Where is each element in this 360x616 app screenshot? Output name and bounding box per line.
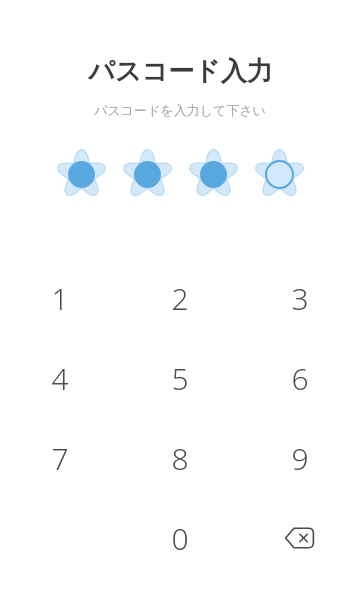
staticText: 6: [291, 358, 309, 399]
button[interactable]: 4: [20, 338, 100, 418]
button[interactable]: 8: [140, 418, 220, 498]
staticText: 7: [51, 438, 69, 479]
staticText: 9: [291, 438, 309, 479]
button[interactable]: 5: [140, 338, 220, 418]
button[interactable]: 7: [20, 418, 100, 498]
button[interactable]: 3: [260, 258, 340, 338]
staticText: 0: [171, 518, 189, 559]
staticText: 3: [291, 278, 309, 319]
staticText: 1: [51, 278, 69, 319]
button[interactable]: Backspace: [260, 498, 340, 578]
button[interactable]: 0: [140, 498, 220, 578]
staticText: 5: [171, 358, 189, 399]
button[interactable]: 9: [260, 418, 340, 498]
button[interactable]: 1: [20, 258, 100, 338]
staticText: 4: [51, 358, 69, 399]
staticText: 2: [171, 278, 189, 319]
button[interactable]: 6: [260, 338, 340, 418]
staticText: 8: [171, 438, 189, 479]
staticText: パスコード入力: [88, 55, 273, 88]
button[interactable]: 2: [140, 258, 220, 338]
staticText: パスコードを入力して下さい: [94, 102, 266, 118]
